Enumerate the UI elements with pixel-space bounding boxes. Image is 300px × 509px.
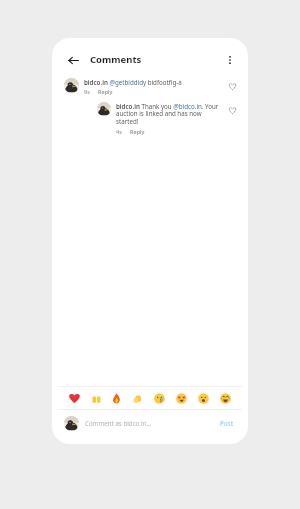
button[interactable]: Emoji HeartEyes xyxy=(170,388,192,408)
button[interactable]: Emoji Surprised xyxy=(192,388,214,408)
staticText: 4s xyxy=(116,128,122,135)
button[interactable]: Emoji Fire xyxy=(106,388,127,408)
button[interactable]: Emoji Cry xyxy=(148,388,170,408)
button[interactable]: Post xyxy=(218,417,236,429)
button[interactable]: More options xyxy=(221,51,239,69)
staticText: bidco.in Thank you @bidco.in. Your aucti… xyxy=(116,102,223,126)
staticText: Comment as bidco.in... xyxy=(85,419,152,427)
button[interactable]: Emoji Clap xyxy=(127,388,148,408)
button[interactable]: Back xyxy=(64,51,82,69)
button[interactable]: bidco.in Thank you @bidco.in. Your aucti… xyxy=(58,97,242,137)
button[interactable]: Reply xyxy=(130,128,145,135)
button[interactable]: Emoji Heart xyxy=(64,388,85,408)
staticText: Reply xyxy=(130,128,145,135)
staticText: Post xyxy=(220,419,234,427)
button[interactable]: Like comment xyxy=(226,104,238,116)
button[interactable]: Emoji Laugh xyxy=(214,388,236,408)
staticText: bidco.in @getbiddidy bidfootfig-a xyxy=(84,78,182,86)
button[interactable]: bidco.in @getbiddidy bidfootfig-a xyxy=(58,73,242,97)
staticText: Reply xyxy=(98,88,113,95)
button[interactable]: Reply xyxy=(98,88,113,95)
button[interactable]: Like comment xyxy=(226,80,238,92)
button[interactable]: Comment as bidco.in... xyxy=(85,419,218,427)
staticText: 9s xyxy=(84,88,90,95)
button[interactable]: Emoji Hands xyxy=(85,388,106,408)
staticText: Comments xyxy=(90,53,142,66)
